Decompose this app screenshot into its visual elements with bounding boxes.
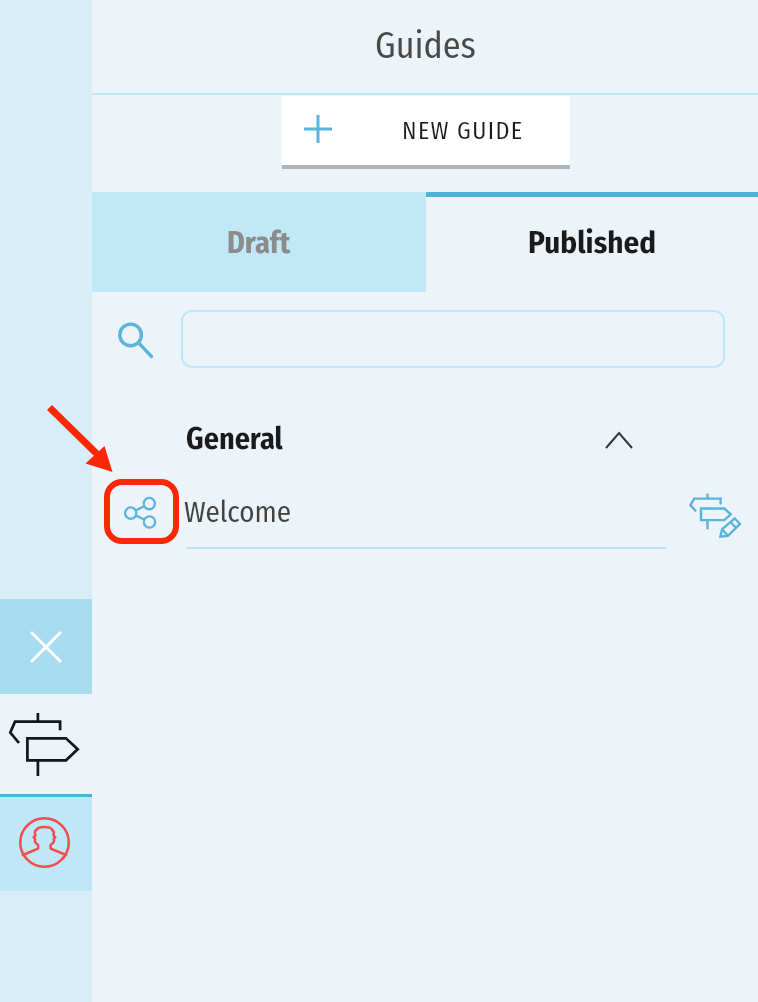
button[interactable]: Search	[117, 322, 157, 362]
staticText: Welcome	[184, 495, 292, 530]
button[interactable]: Collapse General	[92, 405, 668, 469]
button[interactable]: Published	[426, 192, 758, 292]
staticText: NEW GUIDE	[402, 117, 524, 146]
staticText: General	[186, 421, 283, 457]
button[interactable]: Draft	[92, 192, 426, 292]
button[interactable]: Welcome	[92, 478, 758, 548]
button[interactable]: Profile	[0, 797, 92, 891]
staticText: Guides	[375, 24, 476, 67]
button[interactable]: Close	[0, 599, 92, 694]
button[interactable]: NEW GUIDE	[282, 96, 570, 169]
button[interactable]: Edit guide	[688, 490, 744, 540]
staticText: Published	[528, 224, 657, 261]
button[interactable]: Guides	[0, 694, 92, 794]
button[interactable]: Share	[104, 479, 179, 544]
button[interactable]	[181, 310, 725, 368]
staticText: Draft	[227, 225, 291, 261]
